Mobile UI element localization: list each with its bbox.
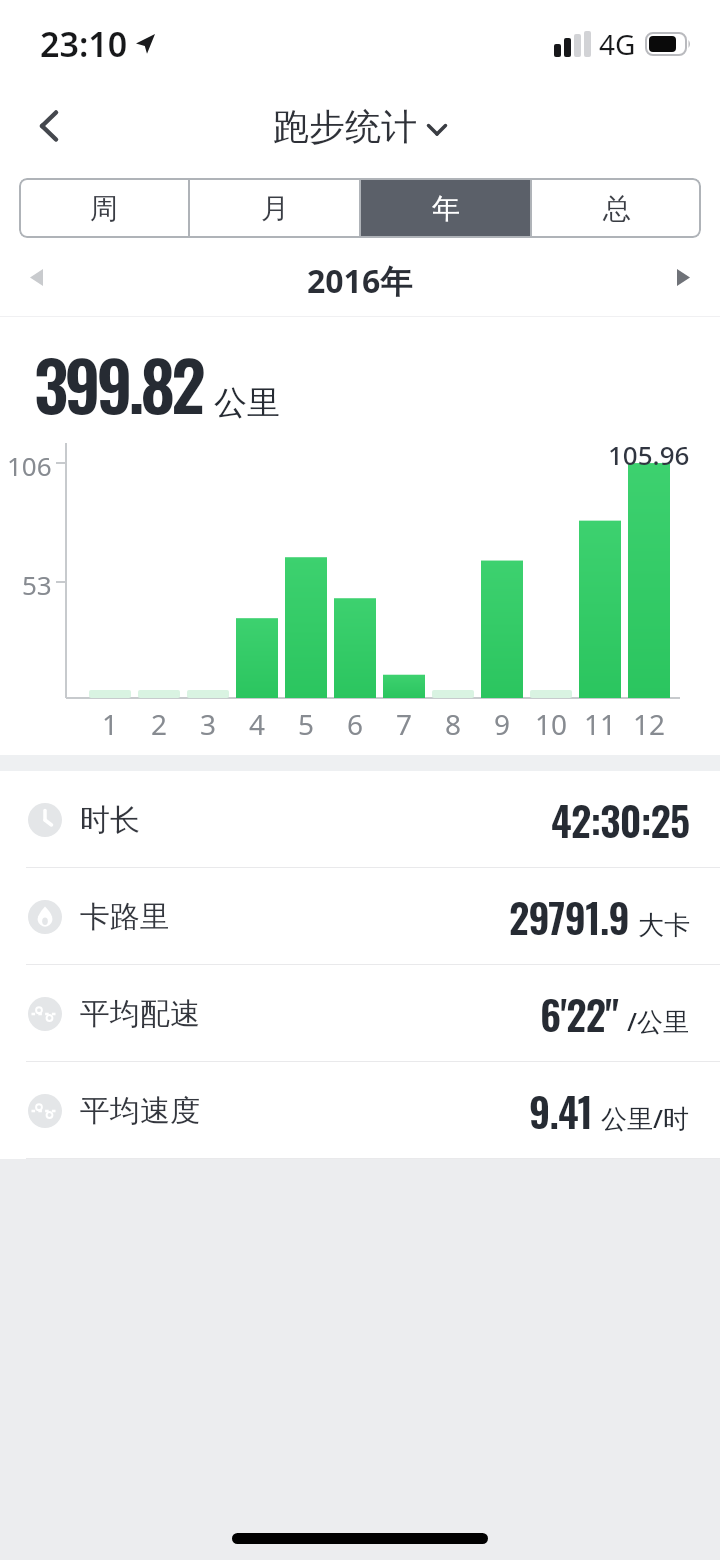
staticText: 卡路里 [80, 898, 170, 936]
staticText: 42:30:25 [551, 790, 690, 849]
staticText: 9.41 [529, 1081, 593, 1140]
staticText: 月 [261, 191, 289, 226]
staticText: 公里 [214, 382, 280, 424]
staticText: 29791.9 [509, 887, 630, 946]
staticText: 53 [22, 567, 52, 602]
staticText: 106 [7, 448, 52, 483]
staticText: 6 [347, 705, 364, 743]
staticText: 3 [200, 705, 217, 743]
staticText: 8 [445, 705, 462, 743]
staticText: 5 [298, 705, 315, 743]
staticText: /公里 [627, 1003, 690, 1039]
staticText: 周 [90, 191, 118, 226]
staticText: 平均配速 [80, 995, 200, 1033]
staticText: 1 [102, 705, 119, 743]
staticText: 12 [633, 705, 666, 743]
staticText: 公里/时 [601, 1100, 690, 1136]
staticText: 9 [494, 705, 511, 743]
staticText: 跑步统计 [273, 104, 417, 149]
staticText: 2016年 [307, 259, 413, 303]
staticText: 11 [584, 705, 617, 743]
staticText: 7 [396, 705, 413, 743]
staticText: 平均速度 [80, 1092, 200, 1130]
staticText: 399.82 [34, 333, 202, 434]
staticText: 4 [249, 705, 266, 743]
staticText: 2 [151, 705, 168, 743]
staticText: 年 [432, 191, 460, 226]
staticText: 105.96 [608, 437, 690, 472]
staticText: 10 [535, 705, 568, 743]
staticText: 时长 [80, 801, 140, 839]
staticText: 大卡 [638, 909, 690, 942]
staticText: 总 [603, 191, 631, 226]
staticText: 6'22" [540, 984, 619, 1043]
staticText: 23:10 [40, 21, 128, 67]
staticText: 4G [599, 25, 636, 63]
